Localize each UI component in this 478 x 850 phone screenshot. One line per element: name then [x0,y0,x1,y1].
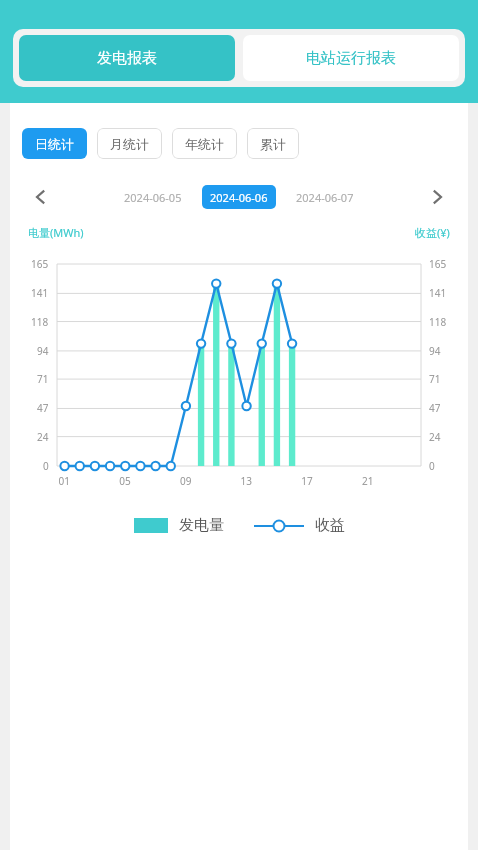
button[interactable]: 2024-06-05 [116,185,190,209]
staticText: 2024-06-07 [296,190,354,205]
button[interactable]: 2024-06-07 [288,185,362,209]
button[interactable]: Next day [422,182,452,212]
staticText: 2024-06-05 [124,190,182,205]
staticText: 月统计 [110,136,149,152]
staticText: 发电报表 [97,49,157,68]
button[interactable]: 电站运行报表 [243,35,459,81]
staticText: 电量(MWh) [28,225,84,240]
staticText: 日统计 [35,136,74,152]
button[interactable]: 月统计 [97,128,162,159]
button[interactable]: 2024-06-06 [202,185,276,209]
button[interactable]: 年统计 [172,128,237,159]
staticText: 发电量 [179,516,224,535]
staticText: 电站运行报表 [306,49,396,68]
button[interactable]: 发电报表 [19,35,235,81]
staticText: 收益 [315,516,345,535]
button[interactable]: 日统计 [22,128,87,159]
button[interactable]: Previous day [26,182,56,212]
staticText: 收益(¥) [415,225,450,240]
staticText: 2024-06-06 [210,190,268,205]
staticText: 累计 [260,136,286,152]
staticText: 年统计 [185,136,224,152]
button[interactable]: 累计 [247,128,299,159]
